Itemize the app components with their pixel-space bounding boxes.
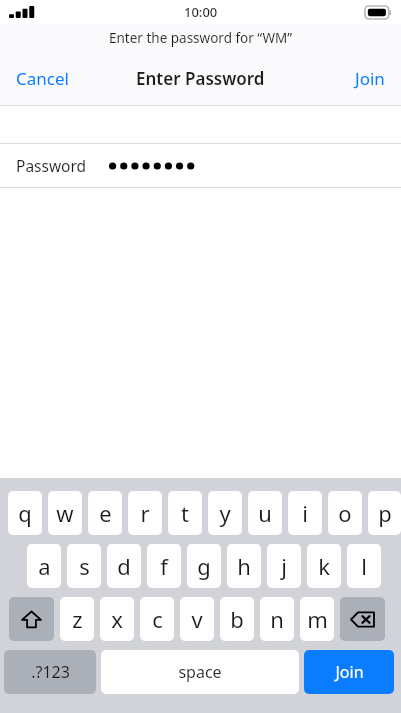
button[interactable]: Cancel <box>0 59 85 98</box>
staticText: t <box>181 498 189 528</box>
button[interactable]: j <box>267 544 301 588</box>
staticText: d <box>117 551 131 581</box>
staticText: Enter Password <box>136 67 265 90</box>
staticText: k <box>318 551 330 581</box>
staticText: Join <box>335 661 364 683</box>
staticText: 10:00 <box>184 3 218 21</box>
button[interactable]: Join <box>304 650 394 694</box>
staticText: z <box>72 604 83 634</box>
staticText: c <box>152 604 163 634</box>
button[interactable]: f <box>147 544 181 588</box>
button[interactable]: q <box>8 491 42 535</box>
staticText: q <box>18 498 32 528</box>
button[interactable]: g <box>187 544 221 588</box>
staticText: Enter the password for “WM” <box>109 29 293 47</box>
staticText: s <box>79 551 90 581</box>
staticText: m <box>307 604 328 634</box>
button[interactable]: Password <box>0 144 401 187</box>
button[interactable]: h <box>227 544 261 588</box>
button[interactable]: y <box>208 491 242 535</box>
staticText: a <box>38 551 51 581</box>
staticText: i <box>302 498 308 528</box>
button[interactable]: w <box>48 491 82 535</box>
button[interactable]: r <box>128 491 162 535</box>
staticText: l <box>361 551 367 581</box>
button[interactable]: b <box>220 597 254 641</box>
staticText: u <box>258 498 272 528</box>
button[interactable]: .?123 <box>4 650 96 694</box>
staticText: o <box>338 498 352 528</box>
staticText: n <box>270 604 284 634</box>
button[interactable]: Join <box>339 59 401 98</box>
button[interactable]: x <box>100 597 134 641</box>
staticText: p <box>378 498 392 528</box>
button[interactable]: p <box>368 491 401 535</box>
button[interactable]: t <box>168 491 202 535</box>
staticText: .?123 <box>31 661 70 683</box>
button[interactable]: o <box>328 491 362 535</box>
staticText: h <box>237 551 251 581</box>
button[interactable]: space <box>101 650 299 694</box>
staticText: Password <box>16 155 87 176</box>
button[interactable]: l <box>347 544 381 588</box>
staticText: space <box>178 661 222 683</box>
button[interactable]: c <box>140 597 174 641</box>
button[interactable]: Shift <box>9 597 54 641</box>
button[interactable]: m <box>300 597 334 641</box>
staticText: r <box>140 498 150 528</box>
staticText: w <box>56 498 74 528</box>
button[interactable]: k <box>307 544 341 588</box>
staticText: j <box>281 551 287 581</box>
staticText: b <box>230 604 244 634</box>
staticText: f <box>160 551 168 581</box>
staticText: y <box>219 498 231 528</box>
button[interactable]: v <box>180 597 214 641</box>
button[interactable]: i <box>288 491 322 535</box>
button[interactable]: d <box>107 544 141 588</box>
button[interactable]: z <box>60 597 94 641</box>
button[interactable]: s <box>67 544 101 588</box>
staticText: v <box>191 604 203 634</box>
button[interactable]: e <box>88 491 122 535</box>
staticText: Join <box>355 67 385 90</box>
staticText: x <box>111 604 123 634</box>
button[interactable]: n <box>260 597 294 641</box>
staticText: Cancel <box>16 67 69 90</box>
staticText: g <box>197 551 211 581</box>
button[interactable]: a <box>27 544 61 588</box>
staticText: e <box>99 498 112 528</box>
button[interactable]: u <box>248 491 282 535</box>
button[interactable]: Backspace <box>340 597 385 641</box>
